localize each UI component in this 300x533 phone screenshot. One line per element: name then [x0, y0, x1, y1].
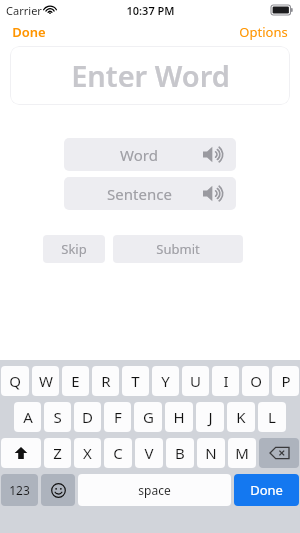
button[interactable]: Done: [0, 20, 58, 44]
staticText: Y: [161, 371, 170, 391]
button[interactable]: Sentence: [64, 177, 236, 210]
button[interactable]: X: [74, 438, 101, 468]
staticText: E: [71, 371, 80, 391]
staticText: G: [143, 407, 154, 427]
button[interactable]: Enter Word: [10, 46, 290, 105]
staticText: Skip: [61, 240, 87, 258]
button[interactable]: G: [134, 402, 162, 432]
staticText: K: [236, 407, 246, 427]
staticText: space: [138, 482, 171, 498]
button[interactable]: N: [197, 438, 225, 468]
staticText: Enter Word: [71, 56, 230, 95]
staticText: Z: [53, 443, 62, 463]
button[interactable]: Word: [64, 138, 236, 171]
button[interactable]: Z: [44, 438, 71, 468]
button[interactable]: Y: [152, 366, 179, 396]
button[interactable]: Done: [234, 474, 299, 506]
button[interactable]: U: [182, 366, 209, 396]
button[interactable]: J: [196, 402, 224, 432]
staticText: Done: [12, 23, 46, 41]
button[interactable]: Emoji: [41, 474, 75, 506]
button[interactable]: A: [14, 402, 41, 432]
button[interactable]: I: [212, 366, 239, 396]
staticText: J: [208, 407, 213, 427]
button[interactable]: T: [122, 366, 149, 396]
button[interactable]: Options: [227, 20, 300, 44]
staticText: Submit: [156, 240, 200, 258]
button[interactable]: W: [32, 366, 59, 396]
staticText: Carrier: [6, 3, 42, 18]
staticText: O: [250, 371, 262, 391]
button[interactable]: Submit: [113, 235, 243, 263]
staticText: T: [131, 371, 140, 391]
staticText: L: [268, 407, 276, 427]
staticText: F: [114, 407, 122, 427]
button[interactable]: B: [166, 438, 194, 468]
staticText: M: [235, 443, 249, 463]
staticText: I: [223, 371, 229, 391]
button[interactable]: P: [272, 366, 299, 396]
staticText: U: [190, 371, 201, 391]
staticText: W: [39, 371, 53, 391]
staticText: S: [53, 407, 62, 427]
staticText: R: [101, 371, 111, 391]
button[interactable]: E: [62, 366, 89, 396]
button[interactable]: Delete: [259, 438, 299, 468]
staticText: C: [113, 443, 123, 463]
staticText: 10:37 PM: [126, 3, 175, 18]
button[interactable]: S: [44, 402, 71, 432]
button[interactable]: Skip: [43, 235, 105, 263]
staticText: Options: [239, 23, 288, 41]
button[interactable]: space: [78, 474, 231, 506]
button[interactable]: H: [165, 402, 193, 432]
staticText: P: [281, 371, 291, 391]
button[interactable]: R: [92, 366, 119, 396]
button[interactable]: C: [104, 438, 132, 468]
button[interactable]: V: [135, 438, 163, 468]
staticText: Word: [120, 145, 158, 165]
button[interactable]: D: [74, 402, 101, 432]
staticText: 123: [9, 482, 30, 498]
button[interactable]: O: [242, 366, 269, 396]
button[interactable]: 123: [1, 474, 38, 506]
staticText: V: [144, 443, 154, 463]
staticText: N: [205, 443, 217, 463]
button[interactable]: K: [227, 402, 255, 432]
button[interactable]: Shift: [1, 438, 41, 468]
button[interactable]: M: [228, 438, 256, 468]
button[interactable]: L: [258, 402, 286, 432]
button[interactable]: F: [104, 402, 131, 432]
staticText: Done: [250, 481, 283, 499]
staticText: H: [173, 407, 185, 427]
staticText: Sentence: [107, 184, 172, 204]
staticText: X: [83, 443, 92, 463]
staticText: B: [175, 443, 185, 463]
staticText: Q: [9, 371, 21, 391]
staticText: A: [23, 407, 33, 427]
button[interactable]: Q: [1, 366, 29, 396]
staticText: D: [82, 407, 93, 427]
